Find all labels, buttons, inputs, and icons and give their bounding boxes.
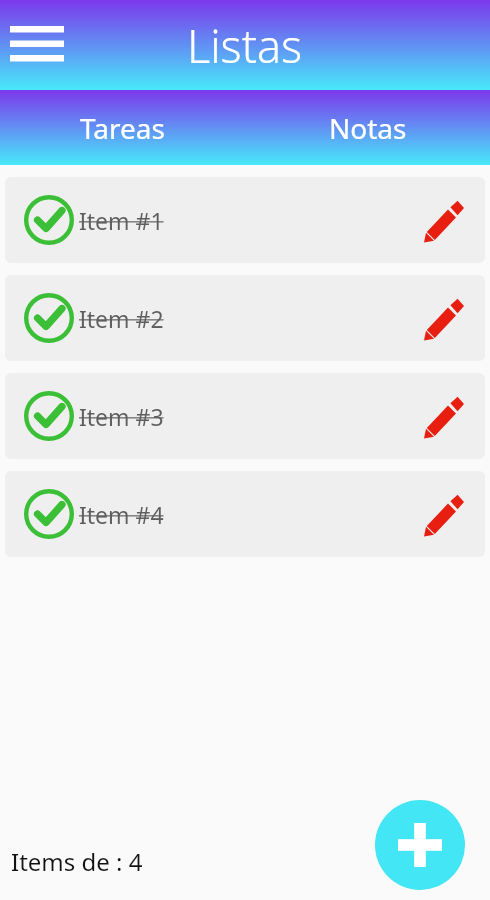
button[interactable]: Toggle done	[5, 177, 485, 263]
button[interactable]: Edit item	[413, 189, 475, 251]
staticText: Item #1	[79, 205, 413, 236]
staticText: Item #3	[79, 401, 413, 432]
button[interactable]: Toggle done	[5, 373, 485, 459]
button[interactable]: Toggle done	[5, 471, 485, 557]
button[interactable]: Add item	[375, 800, 465, 890]
button[interactable]: Notas	[245, 90, 490, 165]
button[interactable]: Toggle done	[5, 275, 485, 361]
button[interactable]: Toggle done	[21, 388, 77, 444]
staticText: Items de : 4	[11, 845, 143, 878]
button[interactable]: Toggle done	[21, 290, 77, 346]
button[interactable]: Edit item	[413, 385, 475, 447]
button[interactable]: Toggle done	[21, 192, 77, 248]
staticText: Item #4	[79, 499, 413, 530]
button[interactable]: Toggle done	[21, 486, 77, 542]
staticText: Notas	[329, 109, 407, 147]
button[interactable]: Edit item	[413, 483, 475, 545]
button[interactable]: Open navigation menu	[4, 10, 70, 80]
staticText: Tareas	[80, 109, 165, 147]
staticText: Item #2	[79, 303, 413, 334]
staticText: Listas	[187, 15, 303, 76]
button[interactable]: Edit item	[413, 287, 475, 349]
button[interactable]: Tareas	[0, 90, 245, 165]
